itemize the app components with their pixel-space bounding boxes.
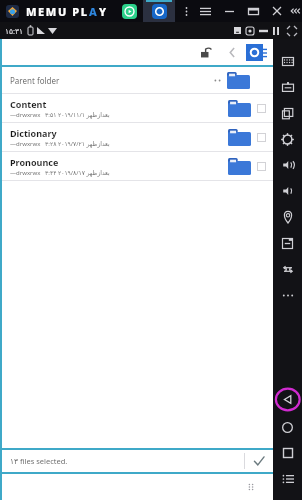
staticText: Pronounce — [10, 156, 59, 168]
staticText: Parent folder — [10, 75, 60, 86]
button[interactable]: Dictionary — [2, 123, 273, 151]
button[interactable]: menu — [193, 0, 217, 22]
staticText: Dictionary — [10, 127, 57, 139]
button[interactable]: Home tab — [122, 4, 137, 19]
button[interactable]: Rotate — [273, 256, 302, 282]
button[interactable]: Close — [265, 0, 289, 22]
staticText: Y — [99, 4, 108, 19]
button[interactable]: Recents — [273, 440, 302, 466]
button[interactable]: App list — [273, 466, 302, 492]
button[interactable]: Capture — [246, 44, 267, 61]
button[interactable]: Back — [273, 384, 302, 414]
button[interactable]: Maximize — [241, 0, 265, 22]
button[interactable]: Volume up — [273, 152, 302, 178]
button[interactable]: Select Dictionary — [257, 133, 266, 142]
button[interactable]: Select Content — [257, 104, 266, 113]
button[interactable]: Unlock — [195, 41, 217, 63]
button[interactable]: App tab — [143, 0, 175, 22]
staticText: ۱۳ files selected. — [10, 456, 68, 466]
button[interactable]: Location — [273, 204, 302, 230]
button[interactable]: Minimize — [217, 0, 241, 22]
button[interactable]: Multi window — [273, 100, 302, 126]
button[interactable]: Home — [273, 414, 302, 440]
button[interactable]: Confirm selection — [245, 450, 273, 472]
button[interactable]: Parent folder — [2, 67, 273, 93]
button[interactable]: Screenshot — [273, 230, 302, 256]
button[interactable]: Keyboard — [273, 48, 302, 74]
button[interactable]: More — [179, 0, 193, 22]
staticText: ۱۵:۳۱ — [5, 26, 24, 36]
staticText: A — [89, 4, 99, 19]
button[interactable]: Pronounce — [2, 152, 273, 180]
button[interactable]: Content — [2, 94, 273, 122]
staticText: MEMU PL — [26, 4, 89, 19]
staticText: —drwxrwx ۳:۴۴ بعدازظهر ۲۰۱۹/۸/۱۷ — [10, 169, 110, 177]
button[interactable]: More — [273, 282, 302, 308]
button[interactable]: Volume down — [273, 178, 302, 204]
button[interactable]: Grid handle — [243, 479, 259, 495]
button[interactable]: Operation recorder — [273, 74, 302, 100]
button[interactable]: Collapse — [289, 0, 302, 22]
staticText: —drwxrwx ۳:۲۸ بعدازظهر ۲۰۱۹/۷/۲۱ — [10, 140, 110, 148]
staticText: —drwxrwx ۳:۵۱ بعدازظهر ۲۰۱۹/۱۱/۱ — [10, 111, 110, 119]
button[interactable]: Back — [221, 41, 243, 63]
button[interactable]: Settings — [273, 126, 302, 152]
staticText: Content — [10, 98, 47, 110]
button[interactable]: Select Pronounce — [257, 162, 266, 171]
